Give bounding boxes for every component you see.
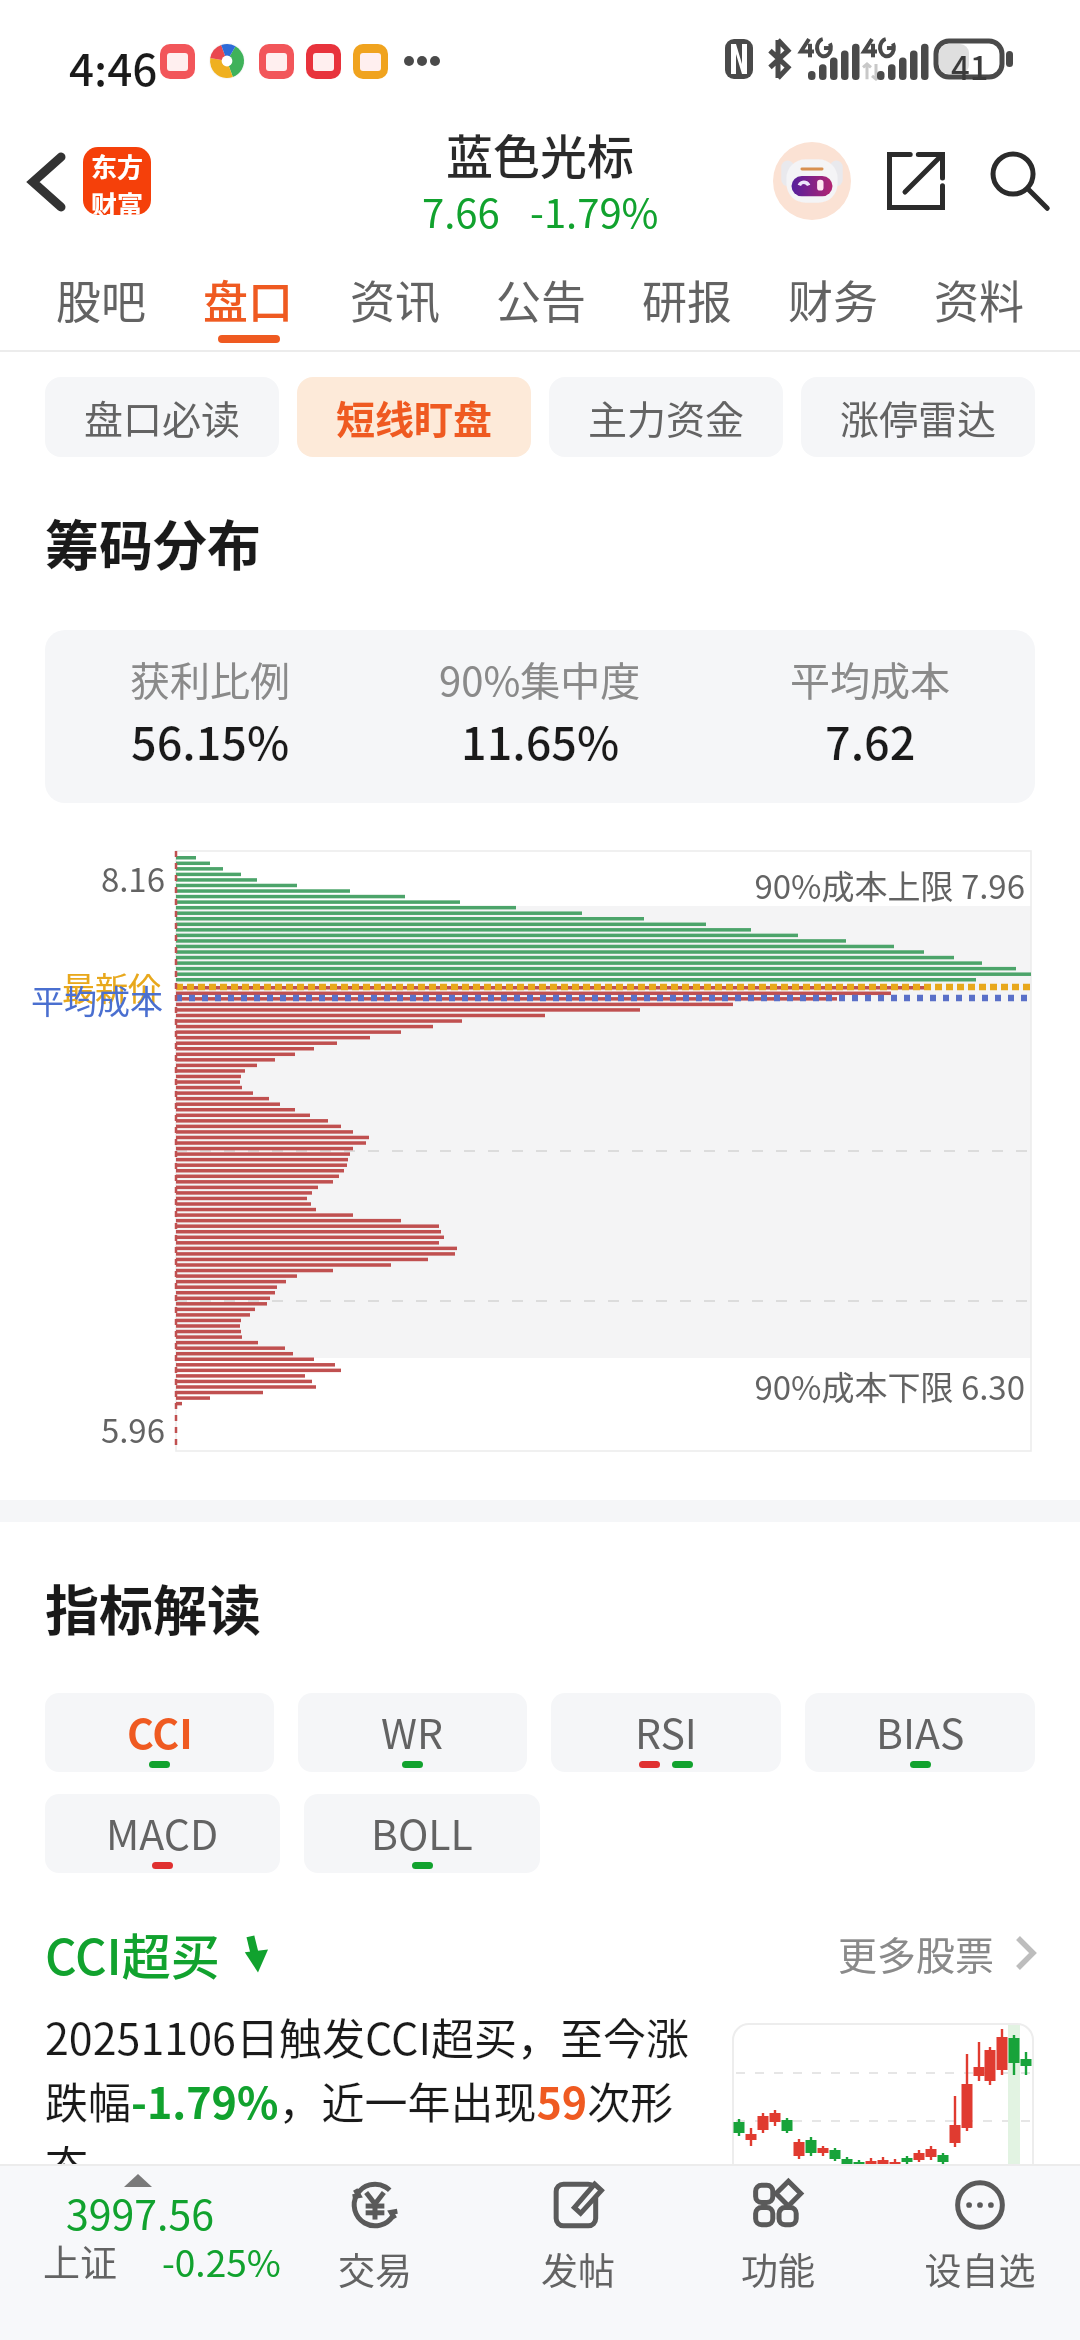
button[interactable]: 盘口必读 [45, 377, 279, 457]
button[interactable]: 东方 [83, 147, 151, 215]
button[interactable]: 短线盯盘 [297, 377, 531, 457]
button[interactable]: Back [6, 131, 80, 205]
staticText: 发帖 [488, 2242, 668, 2296]
button[interactable]: 更多股票 [838, 1925, 1035, 1981]
staticText: -1.79% [530, 182, 659, 240]
staticText: BIAS [876, 1701, 965, 1760]
staticText: 指标解读 [45, 1568, 261, 1646]
staticText: 4:46 [69, 35, 158, 99]
button[interactable]: 资料 [906, 250, 1052, 352]
button[interactable]: 设自选 [890, 2166, 1070, 2338]
staticText: 东方 [91, 147, 144, 185]
staticText: 交易 [285, 2242, 465, 2296]
button[interactable]: 主力资金 [549, 377, 783, 457]
staticText: 短线盯盘 [336, 389, 493, 445]
staticText: 财富 [91, 185, 144, 215]
staticText: 上证 [43, 2234, 117, 2288]
staticText: 56.15% [131, 708, 290, 773]
button[interactable]: 资讯 [322, 250, 468, 352]
button[interactable]: Share [883, 148, 953, 218]
staticText: 11.65% [461, 708, 620, 773]
staticText: -0.25% [162, 2234, 281, 2288]
staticText: 设自选 [890, 2242, 1070, 2296]
button[interactable]: BOLL [304, 1794, 540, 1873]
staticText: 90%成本下限 6.30 [0, 1362, 1025, 1410]
button[interactable]: 公告 [468, 250, 614, 352]
staticText: CCI [127, 1701, 193, 1760]
staticText: 7.66 [422, 182, 500, 240]
button[interactable]: 发帖 [488, 2166, 668, 2338]
staticText: 3997.56 [0, 2182, 280, 2241]
button[interactable]: 股吧 [28, 250, 175, 352]
staticText: 41 [951, 42, 989, 84]
staticText: 8.16 [0, 854, 165, 902]
staticText: 主力资金 [588, 389, 745, 445]
staticText: 财务 [788, 267, 879, 332]
staticText: 涨停雷达 [840, 389, 997, 445]
button[interactable]: MACD [45, 1794, 280, 1873]
staticText: 5.96 [0, 1405, 165, 1453]
staticText: 功能 [688, 2242, 868, 2296]
button[interactable]: CCI超买 [45, 1918, 276, 1989]
button[interactable]: WR [298, 1693, 527, 1772]
staticText: 20251106日触发CCI超买，至今涨跌幅-1.79%，近一年出现59次形态。 [45, 2005, 707, 2196]
button[interactable]: 研报 [614, 250, 760, 352]
button[interactable]: 3997.56 [0, 2166, 280, 2338]
button[interactable]: 功能 [688, 2166, 868, 2338]
staticText: 获利比例 [130, 650, 290, 708]
staticText: 盘口 [203, 267, 294, 332]
staticText: 90%集中度 [439, 650, 641, 708]
staticText: 蓝色光标 [446, 119, 634, 187]
button[interactable]: Search [987, 148, 1057, 218]
staticText: 最新价 [0, 963, 161, 1011]
staticText: 更多股票 [838, 1925, 995, 1981]
button[interactable]: AI assistant [773, 142, 851, 220]
staticText: RSI [635, 1701, 697, 1760]
staticText: CCI超买 [45, 1918, 220, 1989]
button[interactable]: BIAS [805, 1693, 1035, 1772]
staticText: MACD [106, 1802, 219, 1861]
staticText: 平均成本 [790, 650, 950, 708]
staticText: 资料 [934, 267, 1025, 332]
staticText: 平均成本 [0, 976, 163, 1024]
button[interactable]: 涨停雷达 [801, 377, 1035, 457]
button[interactable]: RSI [551, 1693, 781, 1772]
staticText: BOLL [371, 1802, 473, 1861]
staticText: 研报 [642, 267, 733, 332]
button[interactable]: 交易 [285, 2166, 465, 2338]
staticText: 盘口必读 [84, 389, 241, 445]
button[interactable]: CCI [45, 1693, 274, 1772]
button[interactable]: 盘口 [175, 250, 322, 352]
staticText: 资讯 [350, 267, 441, 332]
staticText: 股吧 [56, 267, 147, 332]
staticText: 筹码分布 [45, 503, 261, 581]
staticText: 90%成本上限 7.96 [0, 861, 1025, 909]
staticText: 7.62 [825, 708, 916, 773]
button[interactable]: 财务 [760, 250, 906, 352]
staticText: 公告 [496, 267, 587, 332]
staticText: WR [381, 1701, 444, 1760]
